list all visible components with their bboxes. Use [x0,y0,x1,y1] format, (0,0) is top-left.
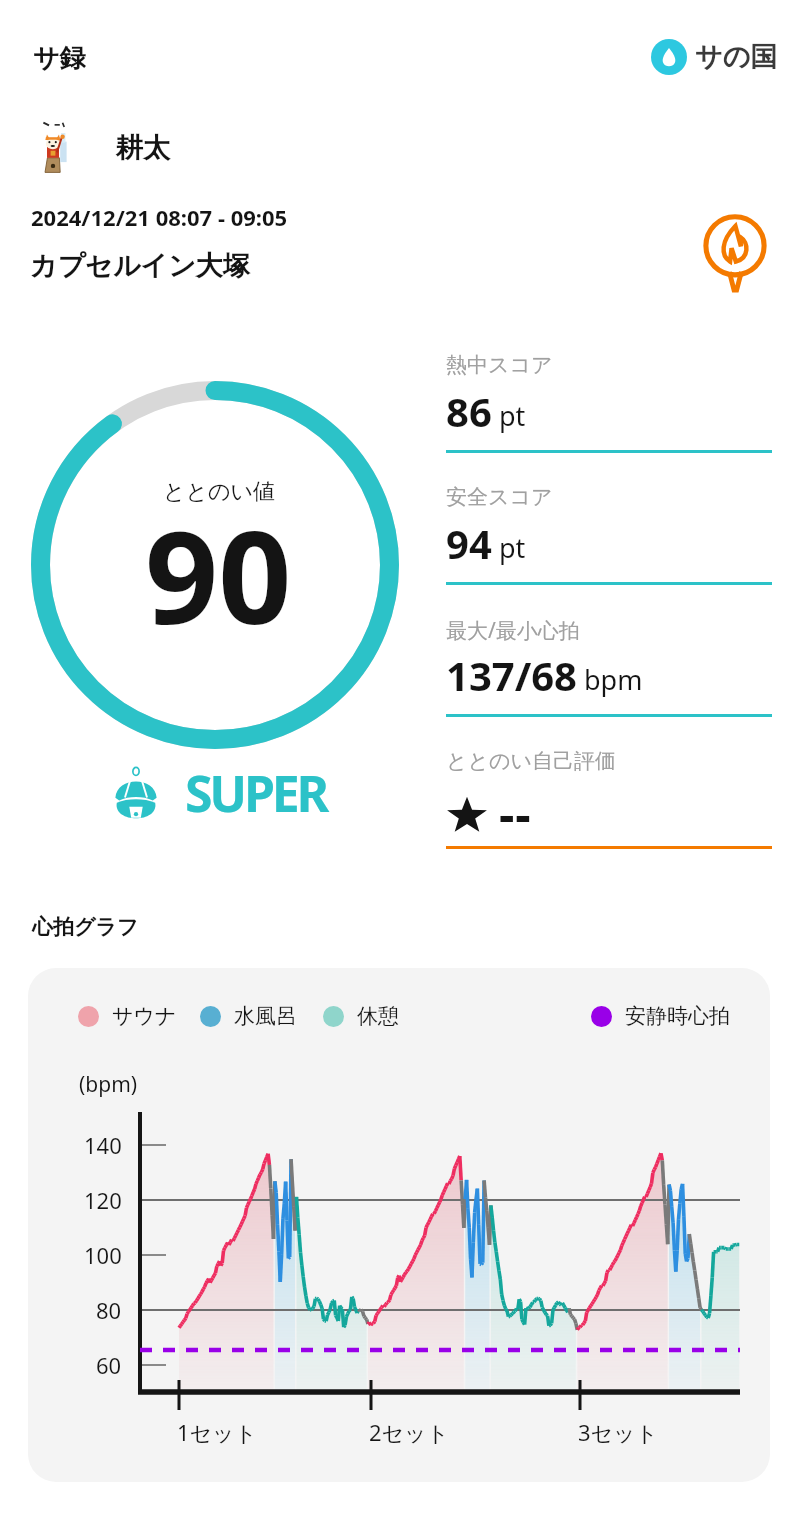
staticText: サの国 [695,40,778,74]
button[interactable]: ととのい自己評価 [446,742,772,874]
staticText: 1セット [177,1417,258,1447]
staticText: 3セット [578,1417,659,1447]
staticText: 心拍グラフ [32,914,139,940]
button[interactable]: 水風呂 [200,1000,297,1032]
staticText: 86 [446,384,492,438]
staticText: 90 [145,487,292,661]
staticText: (bpm) [79,1070,138,1099]
staticText: 耕太 [116,131,170,165]
staticText: 80 [96,1295,122,1325]
staticText: 休憩 [357,1003,399,1029]
button[interactable]: 安全スコア [446,478,772,610]
staticText: ととのい自己評価 [446,748,616,774]
staticText: 120 [84,1185,122,1215]
button[interactable]: Sauna heat [694,213,776,295]
button[interactable]: サの国 [651,39,778,75]
staticText: 2セット [369,1417,450,1447]
button[interactable]: 熱中スコア [446,346,772,478]
staticText: 137/68 [446,648,577,702]
staticText: 安全スコア [446,484,553,510]
button[interactable]: 安静時心拍 [591,1000,730,1032]
staticText: 最大/最小心拍 [446,616,580,645]
staticText: 2024/12/21 08:07 - 09:05 [31,202,288,232]
button[interactable]: 最大/最小心拍 [446,610,772,742]
staticText: 水風呂 [234,1003,297,1029]
staticText: 140 [84,1130,122,1160]
staticText: SUPER [185,759,327,827]
staticText: bpm [584,661,643,698]
staticText: -- [499,781,532,846]
staticText: カプセルイン大塚 [30,249,250,283]
staticText: 94 [446,516,492,570]
staticText: ととのい値 [163,478,276,506]
staticText: 100 [84,1240,122,1270]
staticText: サ録 [33,42,86,75]
staticText: 安静時心拍 [625,1003,730,1029]
staticText: 熱中スコア [446,352,553,378]
staticText: サウナ [112,1003,177,1029]
staticText: 60 [96,1350,122,1380]
button[interactable]: 休憩 [323,1000,399,1032]
button[interactable]: サウナ [78,1000,177,1032]
staticText: pt [499,529,526,566]
staticText: pt [499,397,526,434]
